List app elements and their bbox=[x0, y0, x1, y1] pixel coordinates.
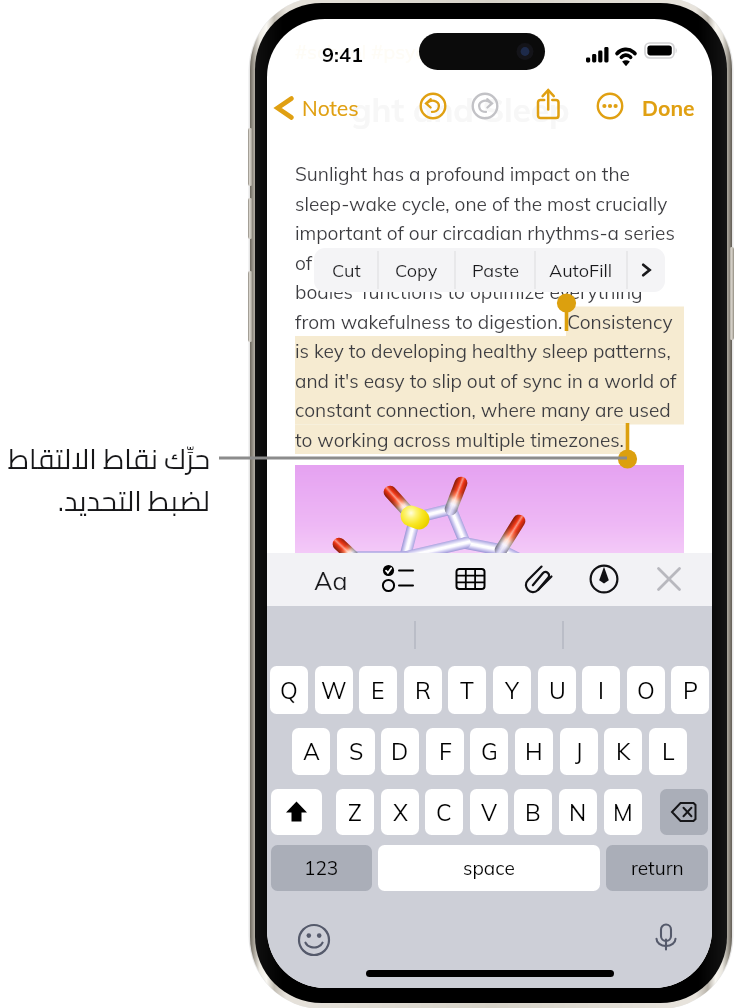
button[interactable]: Emoji bbox=[297, 923, 331, 957]
staticText: E bbox=[371, 676, 385, 705]
staticText: J bbox=[575, 737, 583, 766]
staticText: R bbox=[415, 676, 431, 705]
staticText: حرِّك نقاط الالتقاط لضبط التحديد. bbox=[7, 433, 210, 526]
button[interactable]: Dictate bbox=[649, 921, 683, 955]
button[interactable]: C bbox=[425, 789, 463, 835]
button[interactable]: B bbox=[514, 789, 552, 835]
staticText: K bbox=[616, 737, 631, 766]
button[interactable]: K bbox=[604, 728, 642, 775]
button[interactable]: More bbox=[592, 87, 628, 125]
staticText: Z bbox=[348, 798, 362, 827]
button[interactable]: Checklist bbox=[380, 562, 415, 597]
button[interactable]: Paste bbox=[455, 248, 535, 292]
staticText: sleep-wake cycle, one of the most crucia… bbox=[295, 192, 668, 216]
staticText: #school #psychology bbox=[295, 39, 488, 64]
staticText: B bbox=[525, 798, 541, 827]
staticText: F bbox=[439, 737, 452, 766]
button[interactable]: Done bbox=[640, 89, 696, 127]
staticText: AutoFill bbox=[549, 259, 613, 282]
button[interactable]: X bbox=[381, 789, 419, 835]
button[interactable]: L bbox=[649, 728, 687, 775]
button[interactable]: I bbox=[582, 666, 620, 714]
staticText: A bbox=[303, 737, 320, 766]
staticText: D bbox=[391, 737, 409, 766]
button[interactable]: P bbox=[671, 666, 709, 714]
staticText: of processes that prepare our minds and bbox=[295, 251, 650, 275]
button[interactable]: Y bbox=[493, 666, 531, 714]
button[interactable]: Close bbox=[653, 562, 688, 597]
button[interactable]: Z bbox=[336, 789, 374, 835]
button[interactable]: space bbox=[378, 845, 600, 891]
button[interactable]: W bbox=[315, 666, 353, 714]
button[interactable]: S bbox=[337, 728, 375, 775]
staticText: Sunlight has a profound impact on the bbox=[295, 162, 630, 186]
staticText: M bbox=[613, 798, 633, 827]
staticText: ght and Sleep bbox=[351, 89, 570, 130]
button[interactable]: V bbox=[470, 789, 508, 835]
button[interactable]: O bbox=[627, 666, 665, 714]
staticText: W bbox=[321, 676, 347, 705]
button[interactable]: Cut bbox=[314, 248, 378, 292]
button[interactable]: J bbox=[560, 728, 598, 775]
button[interactable]: Q bbox=[270, 666, 308, 714]
button[interactable]: Attach bbox=[521, 562, 556, 597]
button[interactable]: Backspace bbox=[660, 789, 708, 835]
button[interactable]: M bbox=[604, 789, 642, 835]
staticText: to working across multiple timezones. bbox=[295, 428, 624, 452]
button[interactable] bbox=[295, 465, 684, 557]
button[interactable]: 123 bbox=[271, 845, 372, 891]
staticText: Y bbox=[505, 676, 519, 705]
staticText: Q bbox=[280, 676, 298, 705]
staticText: bodies' functions to optimize everything bbox=[295, 280, 643, 304]
staticText: H bbox=[525, 737, 543, 766]
button[interactable]: Redo bbox=[467, 87, 503, 125]
button[interactable]: Undo bbox=[415, 87, 451, 125]
button[interactable]: Notes bbox=[269, 89, 365, 127]
button[interactable]: H bbox=[515, 728, 553, 775]
button[interactable]: Markup bbox=[587, 562, 622, 597]
staticText: and it's easy to slip out of sync in a w… bbox=[295, 369, 677, 393]
button[interactable]: F bbox=[426, 728, 464, 775]
staticText: X bbox=[393, 798, 408, 827]
staticText: Notes bbox=[302, 95, 359, 121]
button[interactable]: G bbox=[470, 728, 508, 775]
staticText: important of our circadian rhythms-a ser… bbox=[295, 221, 675, 245]
staticText: return bbox=[631, 856, 684, 880]
button[interactable]: Shift bbox=[271, 789, 322, 835]
button[interactable]: A bbox=[292, 728, 330, 775]
staticText: C bbox=[436, 798, 452, 827]
button[interactable]: More actions bbox=[627, 248, 665, 292]
button[interactable]: Aa bbox=[305, 561, 357, 599]
staticText: 123 bbox=[304, 856, 339, 880]
button[interactable]: Table bbox=[453, 562, 488, 597]
staticText: is key to developing healthy sleep patte… bbox=[295, 339, 671, 363]
button[interactable]: Copy bbox=[378, 248, 455, 292]
staticText: I bbox=[598, 676, 604, 705]
button[interactable]: N bbox=[559, 789, 597, 835]
staticText: Done bbox=[642, 95, 695, 121]
staticText: S bbox=[349, 737, 364, 766]
staticText: N bbox=[569, 798, 587, 827]
staticText: Paste bbox=[472, 259, 519, 282]
staticText: Cut bbox=[332, 259, 361, 282]
button[interactable]: T bbox=[448, 666, 486, 714]
button[interactable]: D bbox=[381, 728, 419, 775]
staticText: U bbox=[549, 676, 566, 705]
button[interactable]: Share bbox=[530, 87, 566, 125]
staticText: from wakefulness to digestion. Consisten… bbox=[295, 310, 673, 334]
staticText: V bbox=[481, 798, 498, 827]
button[interactable]: E bbox=[359, 666, 397, 714]
button[interactable]: return bbox=[606, 845, 708, 891]
button[interactable]: AutoFill bbox=[535, 248, 627, 292]
staticText: space bbox=[463, 856, 515, 880]
staticText: O bbox=[637, 676, 655, 705]
staticText: Aa bbox=[314, 565, 348, 596]
staticText: Copy bbox=[395, 259, 438, 282]
button[interactable]: R bbox=[404, 666, 442, 714]
staticText: L bbox=[662, 737, 675, 766]
staticText: G bbox=[481, 737, 498, 766]
staticText: 9:41 bbox=[322, 42, 363, 67]
staticText: T bbox=[460, 676, 474, 705]
staticText: constant connection, where many are used bbox=[295, 398, 671, 422]
button[interactable]: U bbox=[538, 666, 576, 714]
